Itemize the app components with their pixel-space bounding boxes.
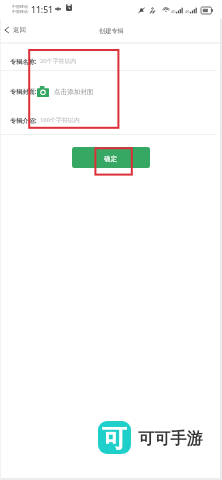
staticText: 专辑名称: [10, 57, 37, 65]
button[interactable]: 点击添加封面 [37, 86, 94, 97]
staticText: 中国移动 [12, 9, 28, 14]
staticText: 11:51 [31, 4, 54, 16]
staticText: 100个字符以内 [40, 116, 80, 124]
staticText: 专辑介绍: [10, 116, 37, 124]
staticText: 可可手游 [138, 428, 203, 448]
staticText: 点击添加封面 [54, 88, 94, 96]
button[interactable]: 返回 [4, 18, 26, 41]
button[interactable]: 确定 [72, 147, 150, 168]
staticText: 中国移动 [12, 4, 28, 9]
staticText: 20个字符以内 [40, 57, 77, 65]
staticText: 4G [171, 9, 176, 14]
staticText: 可 [102, 423, 127, 454]
staticText: 创建专辑 [99, 27, 124, 35]
staticText: 专辑封面: [10, 87, 37, 95]
staticText: 4G [185, 9, 190, 14]
staticText: 确定 [104, 155, 118, 163]
staticText: 返回 [13, 26, 26, 34]
